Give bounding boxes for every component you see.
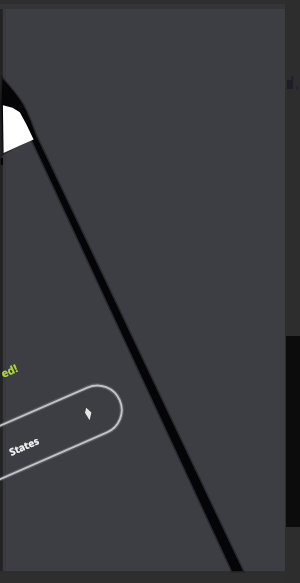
button[interactable]: United States region button [0, 0, 300, 583]
